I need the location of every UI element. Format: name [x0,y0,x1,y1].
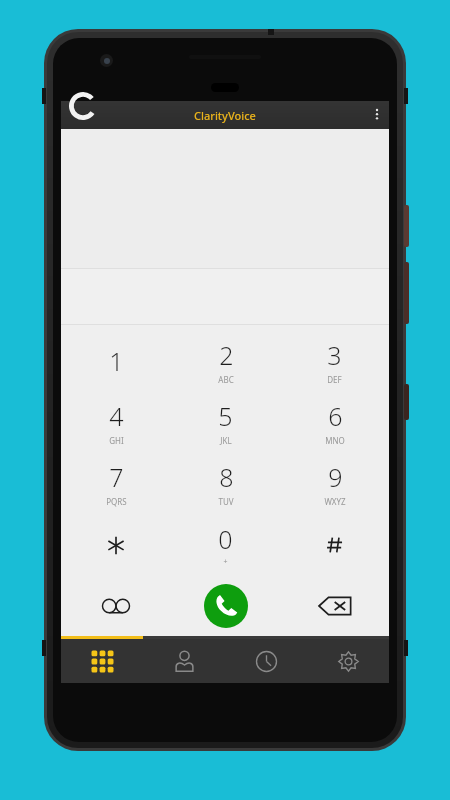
button[interactable]: 2 [171,330,280,392]
button[interactable] [61,514,171,575]
staticText: 6 [328,399,343,433]
button[interactable] [280,514,389,575]
staticText: 7 [109,460,124,494]
button[interactable]: 1 [61,330,171,392]
staticText: 8 [219,460,234,494]
button[interactable]: Backspace [280,575,389,636]
staticText: + [223,557,228,567]
button[interactable]: Contacts [143,639,225,683]
staticText: 5 [218,399,233,433]
button[interactable]: Recents [225,639,307,683]
button[interactable]: ClarityVoice logo [69,92,99,120]
button[interactable]: 9 [280,453,389,514]
button[interactable]: 8 [171,453,280,514]
staticText: ClarityVoice [194,108,256,123]
button[interactable]: Call [204,584,248,628]
button[interactable]: Dialpad [61,639,143,683]
button[interactable]: Voicemail [61,575,171,636]
staticText: JKL [220,435,232,446]
button[interactable]: 7 [61,453,171,514]
button[interactable]: 0 [171,514,280,575]
button[interactable]: Settings [307,639,389,683]
staticText: 3 [327,338,342,372]
staticText: PQRS [106,496,127,507]
button[interactable]: 6 [280,392,389,453]
staticText: 0 [218,522,233,556]
staticText: MNO [325,435,345,446]
button[interactable]: More options [365,101,389,129]
staticText: 9 [328,460,343,494]
button[interactable]: 3 [280,330,389,392]
staticText: DEF [327,374,342,385]
staticText: WXYZ [324,496,346,507]
staticText: GHI [109,435,124,446]
staticText: 2 [219,338,234,372]
button[interactable]: 5 [171,392,280,453]
staticText: 1 [109,344,124,378]
button[interactable]: 4 [61,392,171,453]
staticText: ABC [218,374,234,385]
staticText: TUV [218,496,234,507]
staticText: 4 [109,399,124,433]
